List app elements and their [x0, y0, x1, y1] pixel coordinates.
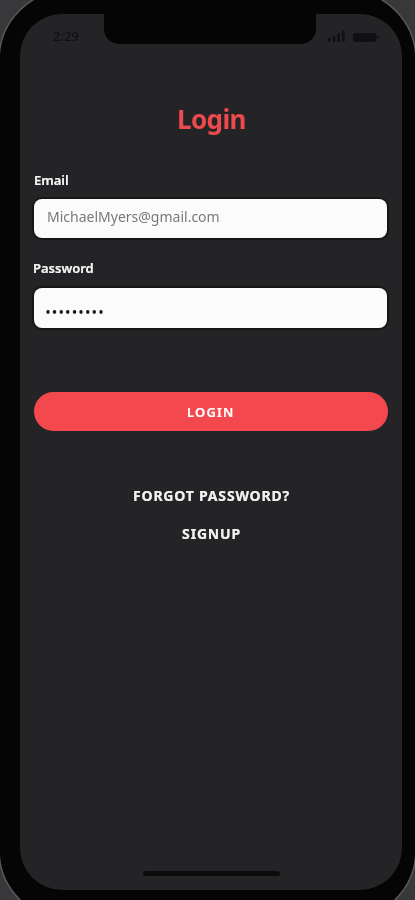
button[interactable]: FORGOT PASSWORD? [133, 486, 290, 505]
staticText: Login [177, 101, 246, 136]
staticText: MichaelMyers@gmail.com [47, 207, 220, 226]
staticText: 2:29 [53, 27, 79, 45]
button[interactable]: MichaelMyers@gmail.com [34, 199, 387, 238]
staticText: Password [33, 259, 94, 277]
button[interactable]: LOGIN [34, 392, 388, 431]
staticText: ••••••••• [45, 301, 105, 323]
button[interactable]: SIGNUP [182, 524, 241, 543]
staticText: Email [34, 171, 69, 189]
staticText: LOGIN [187, 403, 235, 421]
button[interactable]: ••••••••• [34, 288, 387, 328]
staticText: SIGNUP [182, 524, 241, 543]
staticText: FORGOT PASSWORD? [133, 486, 290, 505]
